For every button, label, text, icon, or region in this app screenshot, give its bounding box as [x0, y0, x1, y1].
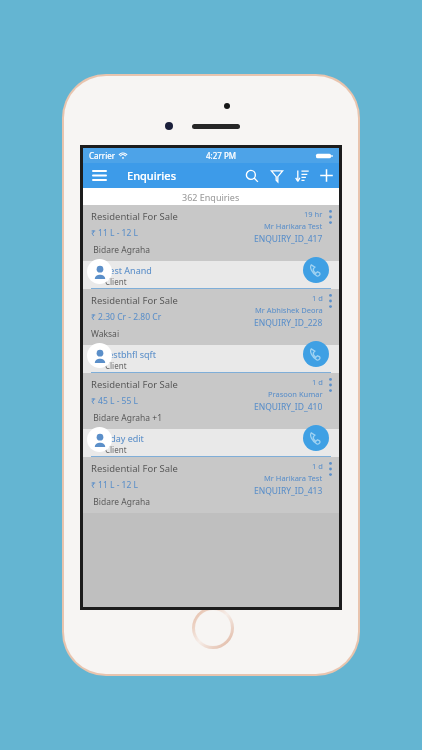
staticText: Residential For Sale	[91, 378, 178, 391]
staticText: 4:27 PM	[206, 150, 237, 161]
staticText: Mr Abhishek Deora	[255, 305, 323, 315]
button[interactable]: Filter	[264, 163, 289, 188]
staticText: Bidare Agraha +1	[91, 412, 162, 424]
staticText: Mr Harikara Test	[264, 473, 323, 483]
button[interactable]: Call	[303, 341, 329, 367]
staticText: ₹ 45 L - 55 L	[91, 395, 139, 407]
staticText: 19 hr	[304, 209, 323, 219]
button[interactable]: Call	[303, 257, 329, 283]
staticText: ₹ 2.30 Cr - 2.80 Cr	[91, 311, 162, 323]
button[interactable]: Add	[314, 163, 339, 188]
staticText: ₹ 11 L - 12 L	[91, 479, 139, 491]
staticText: Bidare Agraha	[91, 244, 151, 256]
button[interactable]: Client avatar	[87, 259, 112, 284]
staticText: ENQUIRY_ID_413	[254, 485, 323, 497]
staticText: Mr Harikara Test	[264, 221, 323, 231]
staticText: Residential For Sale	[91, 462, 178, 475]
staticText: Residential For Sale	[91, 210, 178, 223]
button[interactable]: More options	[325, 460, 335, 478]
button[interactable]: More options	[325, 376, 335, 394]
staticText: 1 d	[312, 377, 323, 387]
button[interactable]: More options	[325, 292, 335, 310]
staticText: Client	[105, 444, 127, 455]
button[interactable]: Call	[303, 425, 329, 451]
staticText: Carrier	[89, 150, 116, 161]
button[interactable]: More options	[325, 208, 335, 226]
staticText: Bidare Agraha	[91, 496, 151, 508]
staticText: Residential For Sale	[91, 294, 178, 307]
button[interactable]: Search	[239, 163, 264, 188]
staticText: 362 Enquiries	[182, 191, 240, 203]
staticText: Test Anand	[105, 264, 152, 276]
staticText: 7day edit	[105, 432, 144, 444]
button[interactable]: Menu	[83, 163, 115, 188]
staticText: Waksai	[91, 328, 120, 340]
staticText: testbhfl sqft	[105, 348, 156, 360]
staticText: ENQUIRY_ID_228	[254, 317, 323, 329]
staticText: Enquiries	[127, 168, 176, 183]
button[interactable]: Sort	[289, 163, 314, 188]
staticText: ENQUIRY_ID_417	[254, 233, 323, 245]
button[interactable]: Client avatar	[87, 343, 112, 368]
staticText: Client	[105, 276, 127, 287]
staticText: 1 d	[312, 461, 323, 471]
staticText: ₹ 11 L - 12 L	[91, 227, 139, 239]
staticText: Client	[105, 360, 127, 371]
staticText: Prasoon Kumar	[268, 389, 323, 399]
staticText: ENQUIRY_ID_410	[254, 401, 323, 413]
staticText: 1 d	[312, 293, 323, 303]
button[interactable]: Client avatar	[87, 427, 112, 452]
